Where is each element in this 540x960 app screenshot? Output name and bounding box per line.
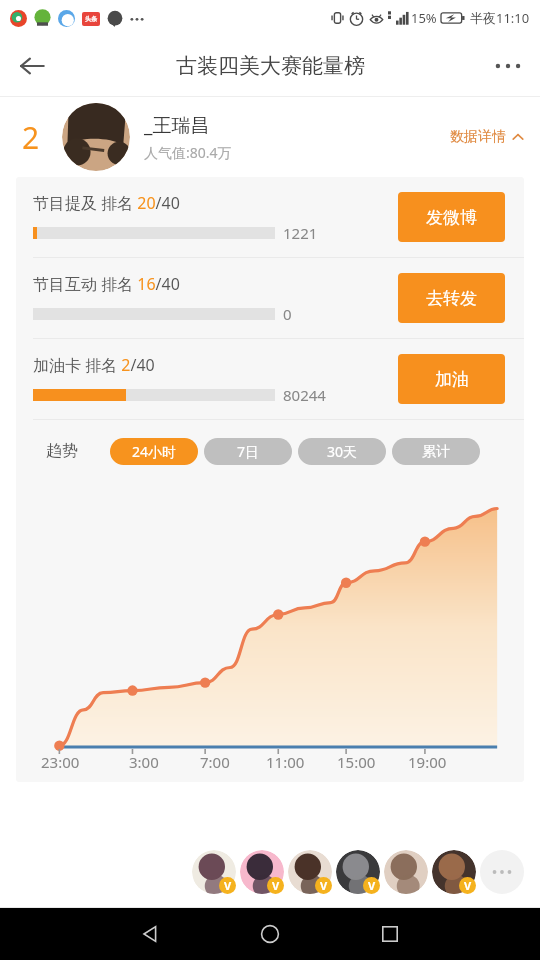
button[interactable]: 节目提及 排名 20/40 xyxy=(16,177,524,257)
button[interactable]: Back xyxy=(90,908,210,960)
staticText: 23:00 xyxy=(41,752,80,772)
button[interactable]: More users xyxy=(480,850,524,894)
button[interactable]: 7日 xyxy=(204,438,292,465)
staticText: V xyxy=(464,878,472,893)
button[interactable]: 加油 xyxy=(398,354,505,404)
staticText: 3:00 xyxy=(129,752,159,772)
button[interactable]: User avatar xyxy=(192,850,236,894)
button[interactable]: Back xyxy=(8,42,56,90)
staticText: V xyxy=(272,878,280,893)
staticText: 人气值:80.4万 xyxy=(144,143,232,162)
button[interactable]: 24小时 xyxy=(110,438,198,465)
button[interactable]: 数据详情 xyxy=(450,128,524,146)
staticText: 头条 xyxy=(85,15,97,23)
button[interactable]: User avatar xyxy=(240,850,284,894)
staticText: 累计 xyxy=(422,443,450,461)
button[interactable]: User avatar xyxy=(288,850,332,894)
staticText: 7:00 xyxy=(200,752,230,772)
button[interactable]: More options xyxy=(484,42,532,90)
staticText: 7日 xyxy=(237,442,260,461)
button[interactable]: 去转发 xyxy=(398,273,505,323)
staticText: 2 xyxy=(22,117,40,158)
staticText: 数据详情 xyxy=(450,128,506,146)
button[interactable]: User avatar xyxy=(336,850,380,894)
staticText: 去转发 xyxy=(426,288,477,309)
staticText: 15:00 xyxy=(337,752,376,772)
button[interactable]: 30天 xyxy=(298,438,386,465)
staticText: V xyxy=(320,878,328,893)
staticText: 11:00 xyxy=(266,752,305,772)
staticText: 19:00 xyxy=(408,752,447,772)
staticText: 节目提及 排名 20/40 xyxy=(33,192,180,214)
staticText: 80244 xyxy=(283,385,326,405)
staticText: 24小时 xyxy=(132,442,177,461)
button[interactable]: Recent apps xyxy=(330,908,450,960)
staticText: 30天 xyxy=(327,442,358,461)
staticText: 发微博 xyxy=(426,207,477,228)
staticText: 古装四美大赛能量榜 xyxy=(176,53,365,79)
button[interactable]: Home xyxy=(210,908,330,960)
staticText: 节目互动 排名 16/40 xyxy=(33,273,180,295)
button[interactable]: 加油卡 排名 2/40 xyxy=(16,339,524,419)
button[interactable]: 2 xyxy=(0,97,540,177)
button[interactable]: 发微博 xyxy=(398,192,505,242)
staticText: _王瑞昌 xyxy=(144,112,210,138)
button[interactable]: 节目互动 排名 16/40 xyxy=(16,258,524,338)
staticText: 趋势 xyxy=(46,441,78,461)
button[interactable]: User avatar xyxy=(384,850,428,894)
button[interactable]: User avatar xyxy=(432,850,476,894)
staticText: 半夜11:10 xyxy=(470,9,530,27)
staticText: 加油 xyxy=(435,369,469,390)
staticText: 0 xyxy=(283,304,292,324)
staticText: V xyxy=(368,878,376,893)
staticText: V xyxy=(224,878,232,893)
staticText: 15% xyxy=(411,9,437,27)
staticText: 加油卡 排名 2/40 xyxy=(33,354,155,376)
button[interactable]: 累计 xyxy=(392,438,480,465)
staticText: 1221 xyxy=(283,223,318,243)
